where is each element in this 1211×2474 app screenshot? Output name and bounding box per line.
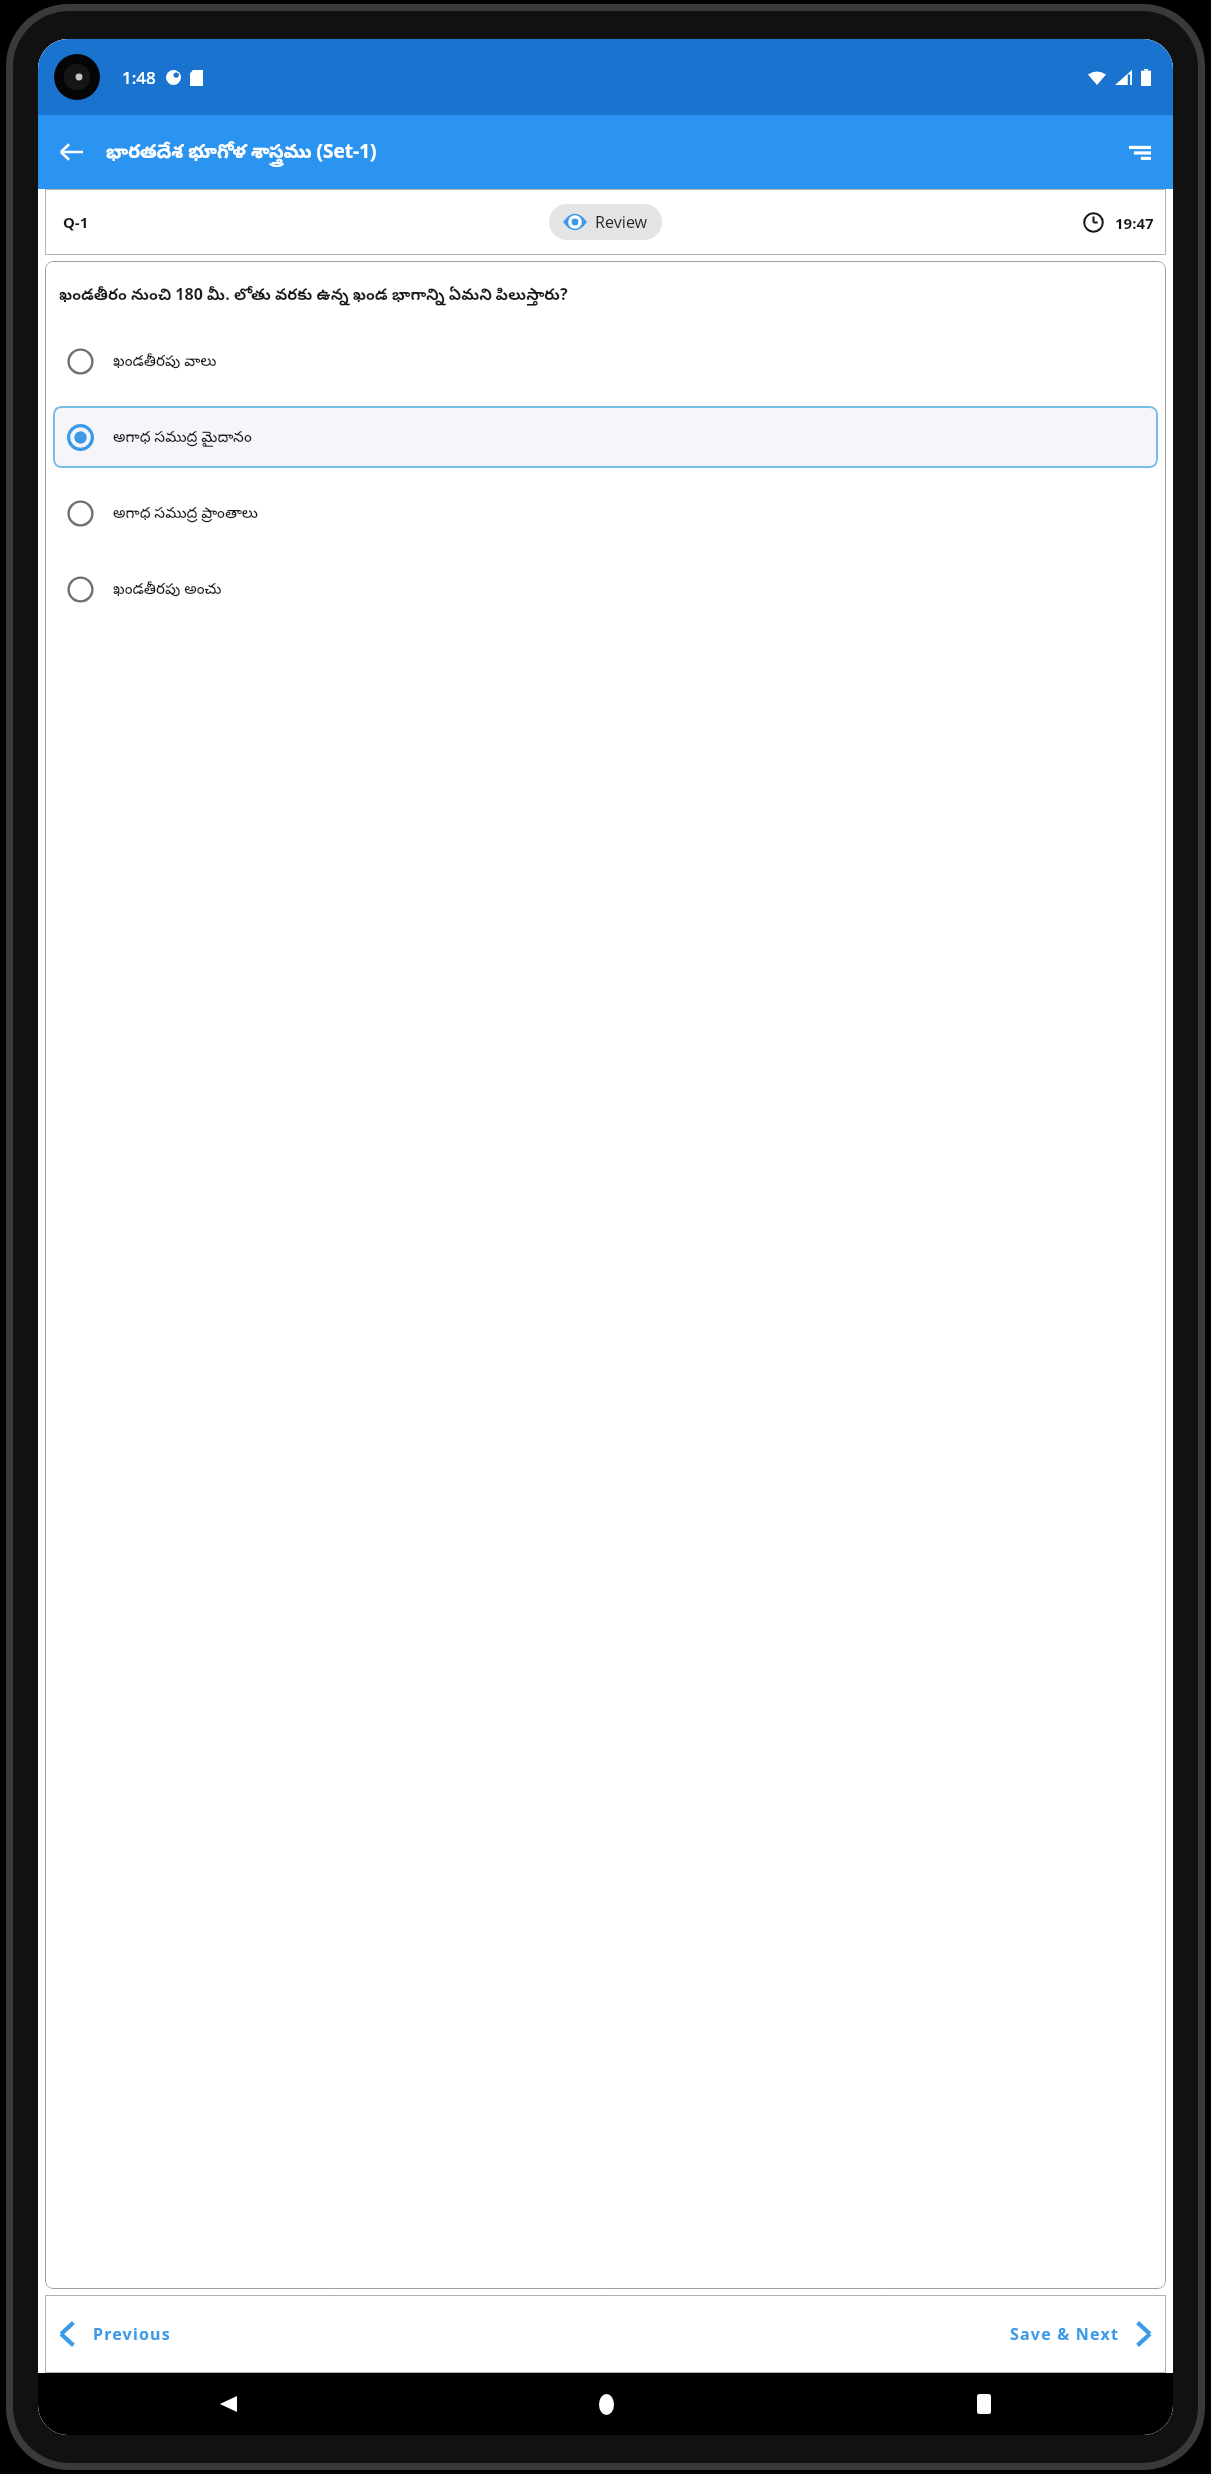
- button[interactable]: అగాధ సముద్ర మైదానం: [53, 406, 1158, 468]
- button[interactable]: Back: [200, 2376, 256, 2432]
- staticText: 19:47: [1115, 213, 1154, 233]
- button[interactable]: ఖండతీరపు అంచు: [53, 558, 1158, 620]
- button[interactable]: అగాధ సముద్ర ప్రాంతాలు: [53, 482, 1158, 544]
- staticText: అగాధ సముద్ర ప్రాంతాలు: [113, 502, 258, 525]
- button[interactable]: Home: [578, 2376, 634, 2432]
- staticText: Q-1: [63, 212, 89, 232]
- button[interactable]: Review: [549, 204, 662, 240]
- button[interactable]: Previous: [45, 2295, 185, 2373]
- button[interactable]: ఖండతీరపు వాలు: [53, 330, 1158, 392]
- staticText: 1:48: [122, 66, 156, 89]
- staticText: ఖండతీరం నుంచి 180 మీ. లోతు వరకు ఉన్న ఖండ…: [59, 283, 568, 308]
- staticText: Review: [595, 211, 648, 233]
- staticText: భారతదేశ భూగోళ శాస్త్రము (Set-1): [106, 138, 377, 167]
- button[interactable]: Save & Next: [996, 2295, 1166, 2373]
- staticText: అగాధ సముద్ర మైదానం: [113, 426, 252, 449]
- staticText: Previous: [93, 2323, 171, 2345]
- staticText: Save & Next: [1010, 2323, 1120, 2345]
- staticText: ఖండతీరపు అంచు: [113, 578, 222, 601]
- button[interactable]: Recent apps: [956, 2376, 1012, 2432]
- staticText: ఖండతీరపు వాలు: [113, 350, 217, 373]
- button[interactable]: Back: [46, 127, 96, 177]
- button[interactable]: Menu: [1115, 127, 1165, 177]
